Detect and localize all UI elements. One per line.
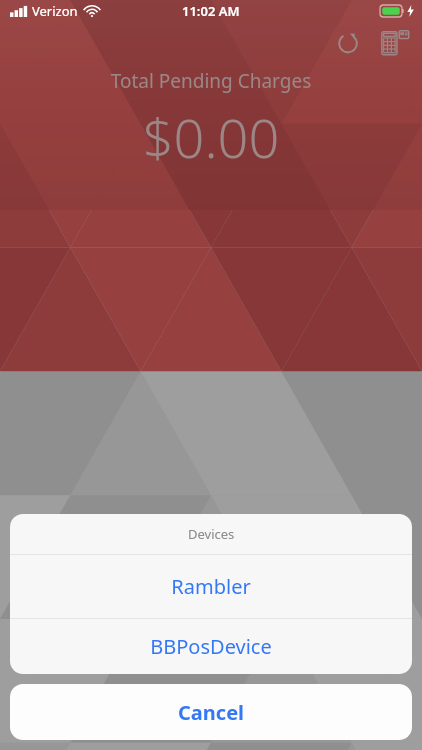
- staticText: Cancel: [178, 699, 245, 726]
- staticText: Total Pending Charges: [0, 68, 422, 94]
- button[interactable]: BBPosDevice: [10, 619, 412, 674]
- button[interactable]: Rambler: [10, 555, 412, 618]
- button[interactable]: Refresh: [328, 23, 368, 63]
- staticText: $0.00: [0, 100, 422, 174]
- staticText: Devices: [188, 525, 235, 543]
- staticText: 11:02 AM: [182, 2, 240, 20]
- staticText: BBPosDevice: [150, 633, 272, 660]
- staticText: Verizon: [32, 2, 78, 20]
- staticText: Rambler: [171, 573, 251, 600]
- button[interactable]: Card reader: [374, 22, 416, 64]
- button[interactable]: Cancel: [10, 684, 412, 740]
